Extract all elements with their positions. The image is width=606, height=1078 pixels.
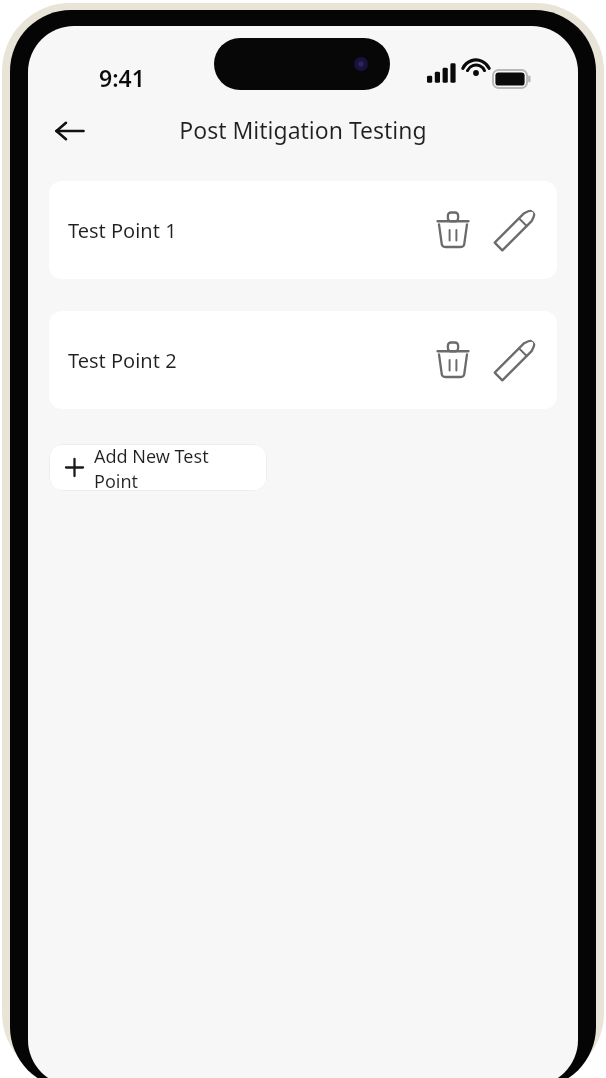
button[interactable]: Edit [489,204,541,256]
staticText: Test Point 1 [68,217,177,244]
button[interactable]: Back [45,106,95,156]
button[interactable]: Edit [489,334,541,386]
staticText: Test Point 2 [68,347,177,374]
button[interactable]: Delete [427,334,479,386]
button[interactable]: Test Point 1 [49,181,557,279]
staticText: 9:41 [99,62,145,93]
staticText: Add New Test Point [94,444,250,491]
button[interactable]: Add New Test Point [49,444,267,491]
button[interactable]: Delete [427,204,479,256]
button[interactable]: Test Point 2 [49,311,557,409]
staticText: Post Mitigation Testing [28,114,578,145]
